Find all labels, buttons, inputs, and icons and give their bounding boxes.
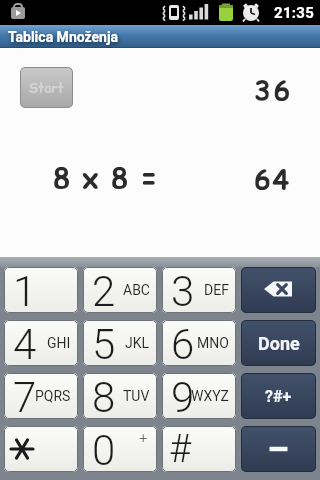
button[interactable]: # xyxy=(162,426,236,472)
button[interactable]: 0 xyxy=(83,426,157,472)
staticText: 1 xyxy=(13,267,37,313)
staticText: TUV xyxy=(123,388,150,404)
staticText: # xyxy=(169,427,192,472)
button[interactable]: 4 xyxy=(4,320,78,366)
button[interactable]: 8 xyxy=(83,373,157,419)
staticText: 5 xyxy=(92,320,116,366)
button[interactable]: Done xyxy=(241,320,316,366)
staticText: 4 xyxy=(13,320,37,366)
button[interactable]: 9 xyxy=(162,373,236,419)
button[interactable] xyxy=(241,426,316,472)
staticText: 64 xyxy=(254,161,291,199)
button[interactable]: 1 xyxy=(4,267,78,313)
staticText: + xyxy=(139,429,148,447)
staticText: 36 xyxy=(254,72,293,110)
button[interactable]: 2 xyxy=(83,267,157,313)
staticText: ABC xyxy=(123,282,150,298)
staticText: 2 xyxy=(92,267,116,313)
staticText: MNO xyxy=(197,335,229,351)
button[interactable]: 6 xyxy=(162,320,236,366)
staticText: 6 xyxy=(171,320,195,366)
staticText: ?#+ xyxy=(265,387,292,406)
staticText: 0 xyxy=(92,426,116,472)
staticText: JKL xyxy=(125,335,150,351)
staticText: DEF xyxy=(204,282,229,298)
button[interactable] xyxy=(241,267,316,313)
staticText: WXYZ xyxy=(191,388,229,404)
staticText: 8 x 8 = xyxy=(53,158,158,197)
staticText: GHI xyxy=(47,335,71,351)
staticText: Start xyxy=(29,79,64,97)
staticText: Tablica Množenja xyxy=(8,29,119,45)
staticText: 21:35 xyxy=(274,4,315,22)
staticText: 3 xyxy=(171,267,195,313)
staticText: Done xyxy=(258,333,300,354)
staticText: 9 xyxy=(171,373,195,419)
staticText: 7 xyxy=(13,373,37,419)
button[interactable]: 7 xyxy=(4,373,78,419)
button[interactable] xyxy=(4,426,78,472)
button[interactable]: Start xyxy=(20,67,73,108)
staticText: PQRS xyxy=(35,388,71,404)
button[interactable]: 3 xyxy=(162,267,236,313)
staticText: 8 xyxy=(92,373,116,419)
button[interactable]: ?#+ xyxy=(241,373,316,419)
button[interactable]: 5 xyxy=(83,320,157,366)
